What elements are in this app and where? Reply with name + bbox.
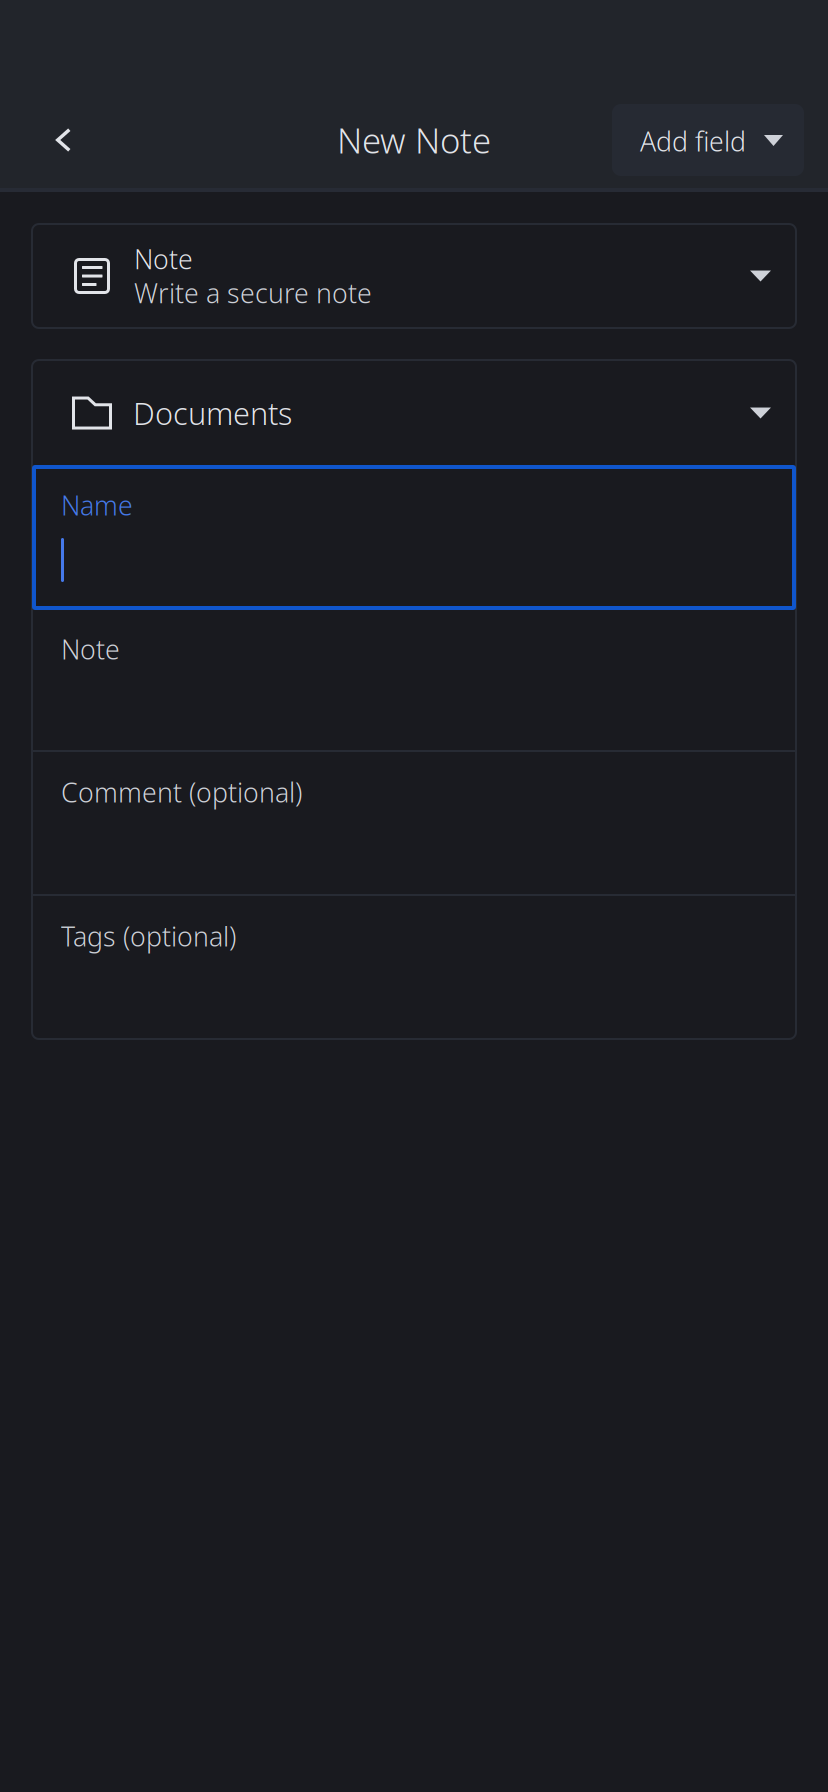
staticText: Add field bbox=[640, 123, 746, 159]
button[interactable]: Add field bbox=[612, 104, 804, 176]
staticText: Note bbox=[134, 241, 193, 277]
button[interactable]: Name bbox=[32, 466, 796, 609]
button[interactable]: Note bbox=[32, 609, 796, 750]
staticText: Name bbox=[61, 487, 133, 523]
staticText: Documents bbox=[133, 392, 292, 434]
staticText: Tags (optional) bbox=[61, 918, 236, 954]
button[interactable]: Note bbox=[32, 224, 796, 328]
button[interactable]: Documents bbox=[32, 360, 796, 466]
staticText: Write a secure note bbox=[134, 275, 372, 311]
staticText: Comment (optional) bbox=[61, 774, 302, 810]
staticText: New Note bbox=[337, 116, 491, 164]
button[interactable]: Tags (optional) bbox=[32, 896, 796, 1039]
staticText: Note bbox=[61, 631, 120, 667]
button[interactable]: Comment (optional) bbox=[32, 752, 796, 894]
button[interactable]: Back bbox=[21, 98, 105, 182]
